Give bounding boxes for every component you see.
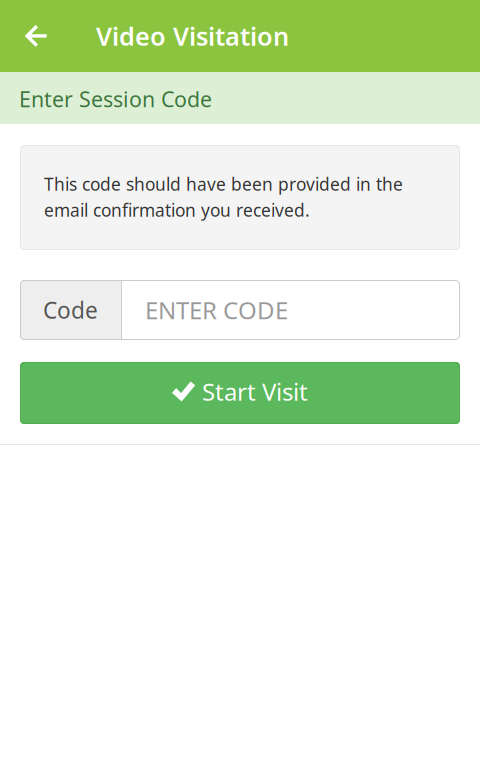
- button[interactable]: Start Visit: [20, 362, 460, 424]
- staticText: This code should have been provided in t…: [44, 172, 403, 195]
- button[interactable]: ENTER CODE: [121, 280, 460, 340]
- staticText: Code: [43, 295, 98, 325]
- staticText: email confirmation you received.: [44, 198, 310, 221]
- staticText: Enter Session Code: [19, 85, 212, 113]
- button[interactable]: Back: [0, 0, 96, 72]
- staticText: ENTER CODE: [145, 294, 288, 326]
- staticText: Start Visit: [202, 376, 308, 407]
- staticText: Video Visitation: [96, 19, 289, 53]
